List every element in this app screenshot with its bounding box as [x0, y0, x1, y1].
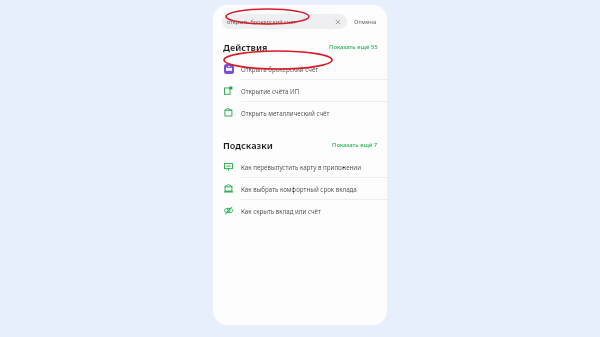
staticText: Действия [223, 41, 268, 53]
staticText: Открытие счёта ИП [241, 87, 300, 95]
button[interactable]: Показать ещё 55 [329, 43, 378, 51]
button[interactable]: Открытие счёта ИП [213, 80, 387, 101]
button[interactable]: Отмена [353, 18, 378, 26]
staticText: Отмена [354, 18, 377, 26]
staticText: Как перевыпустить карту в приложении [241, 163, 362, 171]
staticText: Как скрыть вклад или счёт [241, 207, 321, 215]
button[interactable]: Открыть брокерский счёт [213, 58, 387, 79]
button[interactable]: Как скрыть вклад или счёт [213, 200, 387, 221]
staticText: Подсказки [223, 139, 273, 151]
staticText: Показать ещё 7 [332, 141, 378, 149]
button[interactable]: открыть брокерский счет [222, 14, 347, 29]
staticText: открыть брокерский счет [227, 18, 334, 26]
button[interactable]: Как перевыпустить карту в приложении [213, 156, 387, 177]
button[interactable]: Очистить [334, 18, 342, 26]
button[interactable]: Показать ещё 7 [332, 141, 378, 149]
staticText: Открыть брокерский счёт [241, 65, 319, 73]
staticText: Открыть металлический счёт [241, 109, 330, 117]
staticText: Как выбрать комфортный срок вклада [241, 185, 357, 193]
staticText: Показать ещё 55 [329, 43, 378, 51]
button[interactable]: Как выбрать комфортный срок вклада [213, 178, 387, 199]
button[interactable]: Открыть металлический счёт [213, 102, 387, 123]
